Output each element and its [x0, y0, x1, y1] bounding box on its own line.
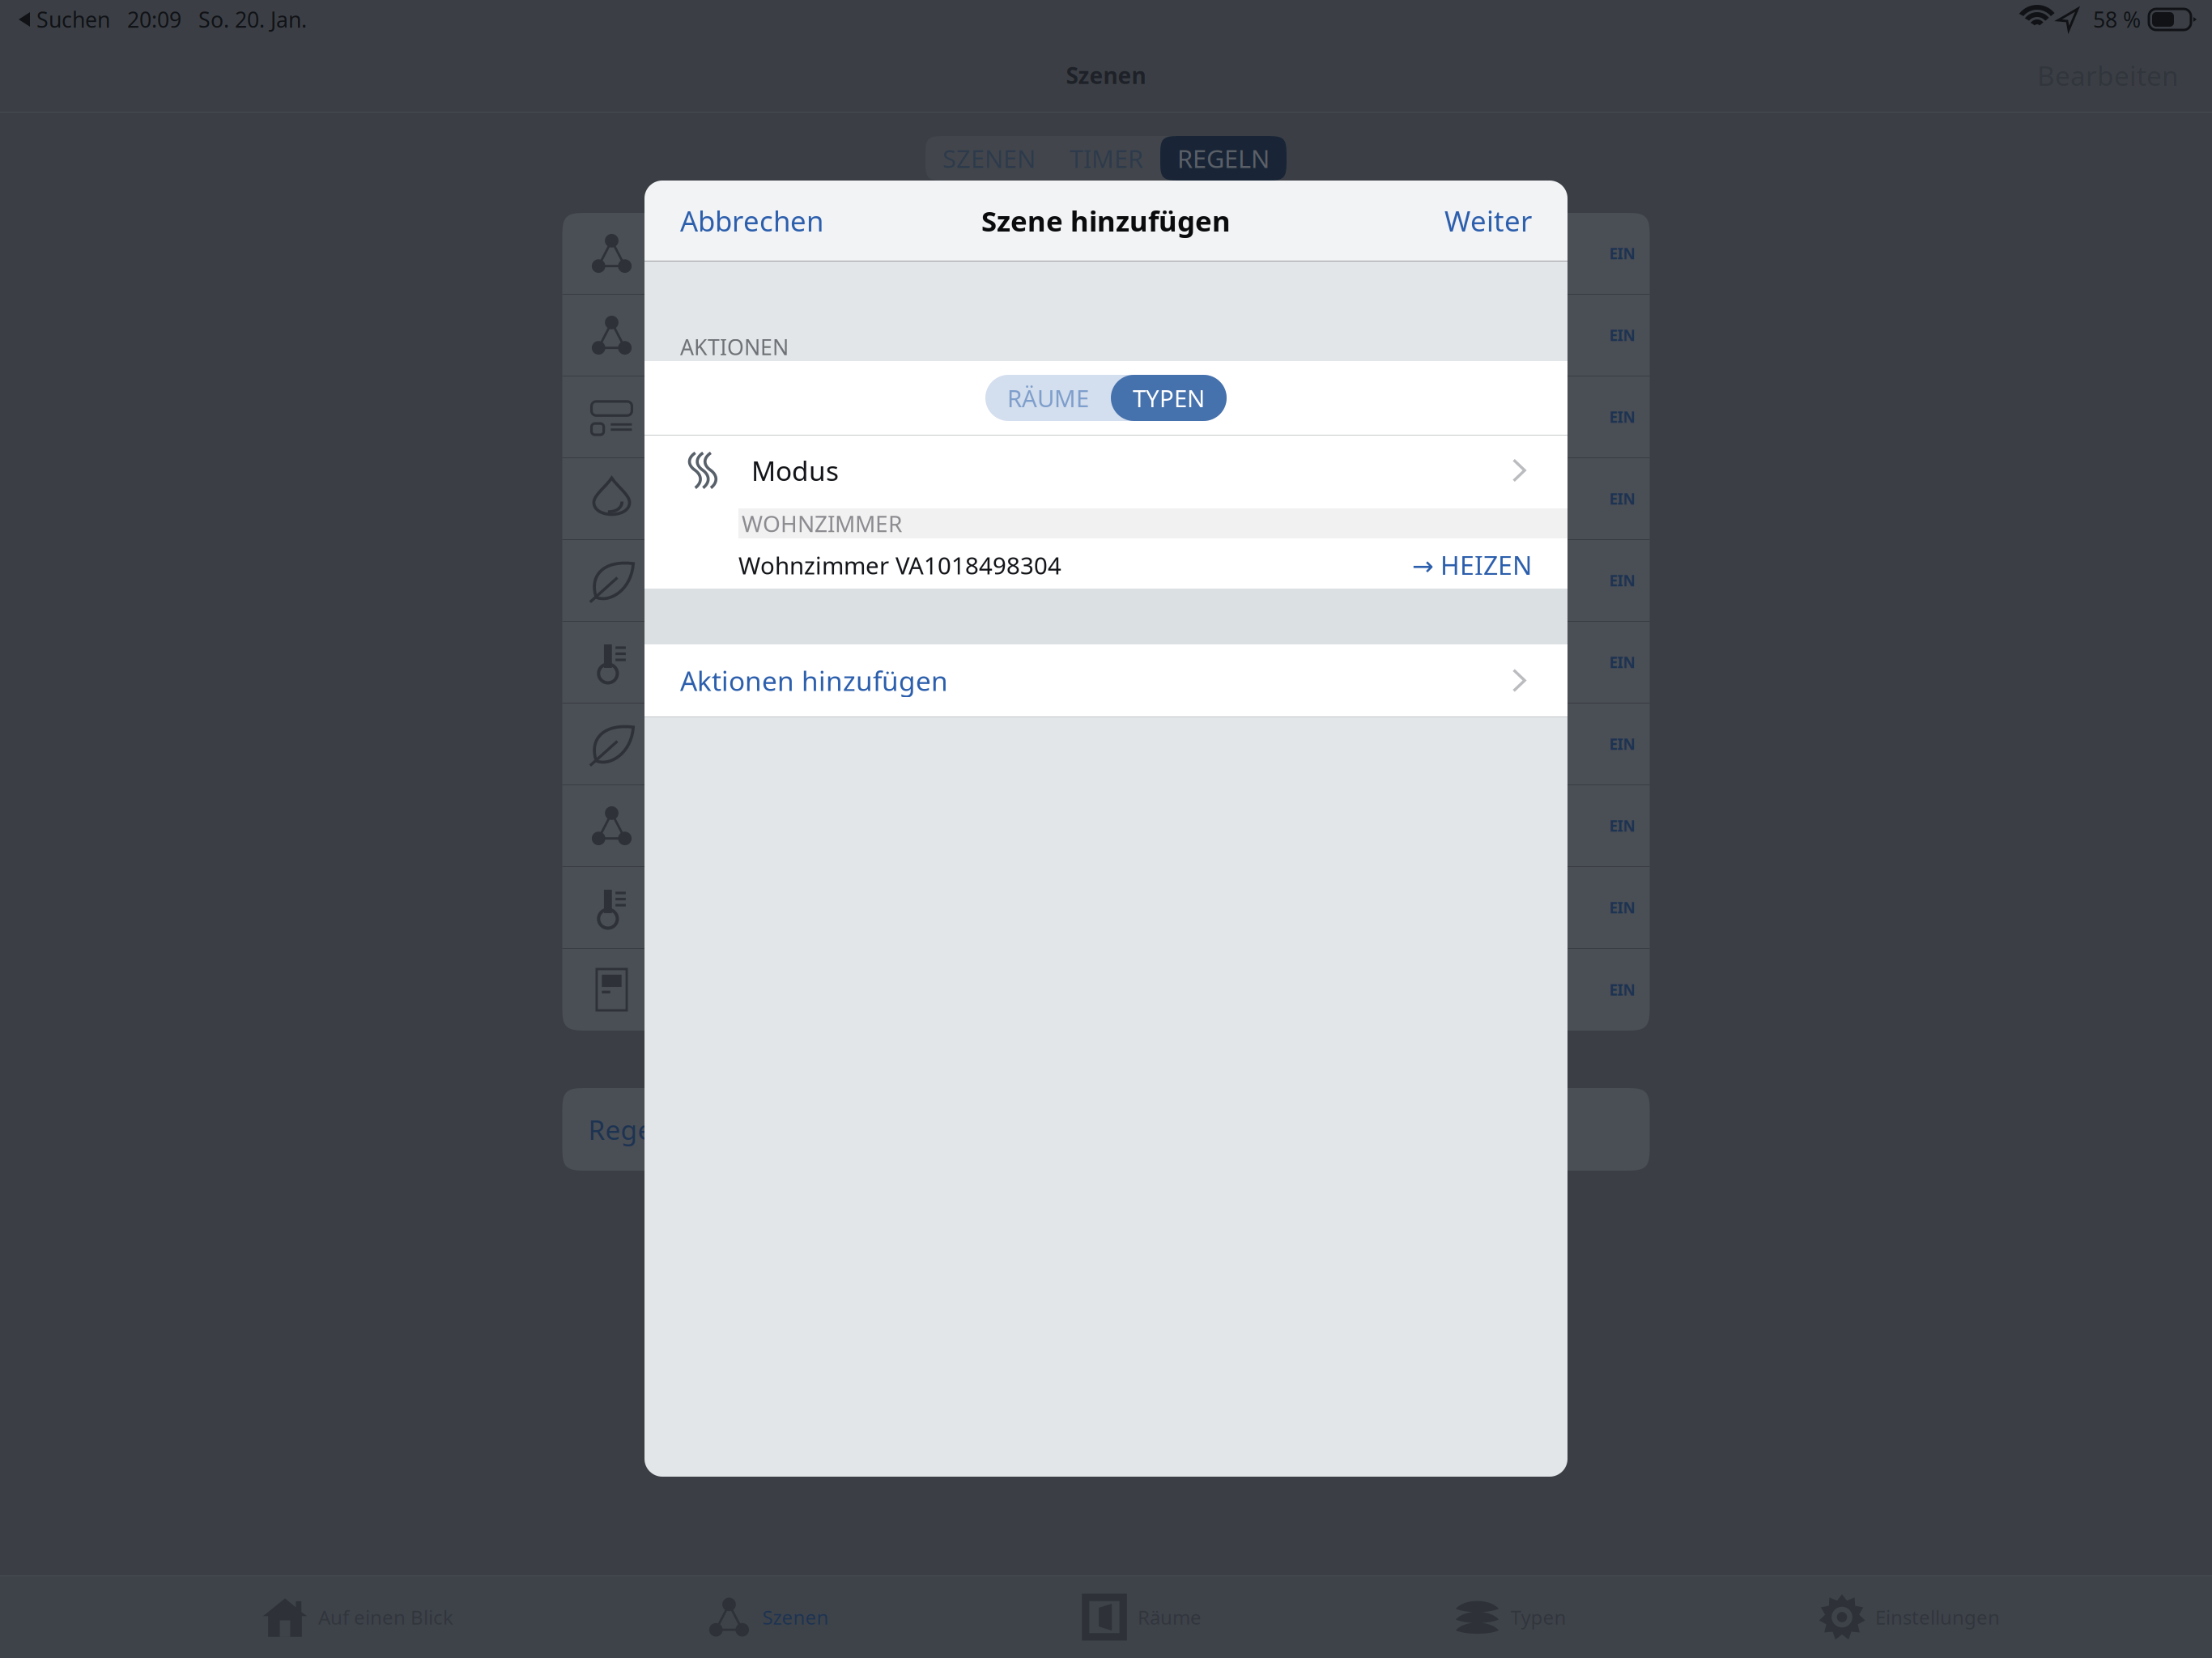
button[interactable]: Räume: [1081, 1576, 1202, 1658]
staticText: Räume: [1138, 1604, 1202, 1630]
staticText: Abbrechen: [680, 202, 823, 239]
staticText: AKTIONEN: [680, 332, 789, 361]
staticText: 58 %: [2082, 5, 2141, 34]
staticText: EIN: [1609, 652, 1635, 672]
staticText: EIN: [1609, 325, 1635, 345]
button[interactable]: Einstellungen: [1819, 1576, 2000, 1658]
staticText: EIN: [1609, 570, 1635, 591]
staticText: → HEIZEN: [1412, 548, 1532, 582]
button[interactable]: TIMER: [1053, 136, 1160, 181]
button[interactable]: Weiter: [1409, 186, 1568, 255]
staticText: Bearbeiten: [2037, 57, 2179, 93]
button[interactable]: Regeln hinzufügen: [562, 1088, 1650, 1171]
staticText: Szene hinzufügen: [981, 202, 1231, 239]
staticText: Suchen: [31, 5, 110, 34]
staticText: REGELN: [1177, 142, 1270, 175]
button[interactable]: Abbrechen: [644, 186, 859, 255]
staticText: Szenen: [1066, 60, 1146, 90]
button[interactable]: RÄUME: [985, 375, 1111, 421]
staticText: 20:09: [110, 5, 181, 34]
staticText: Aktionen hinzufügen: [680, 663, 948, 698]
button[interactable]: Szenen: [706, 1576, 829, 1658]
button[interactable]: Modus: [644, 436, 1568, 505]
button[interactable]: Auf einen Blick: [262, 1576, 453, 1658]
staticText: EIN: [1609, 407, 1635, 427]
staticText: EIN: [1609, 980, 1635, 1000]
staticText: RÄUME: [1007, 382, 1089, 414]
staticText: Typen: [1510, 1604, 1566, 1630]
staticText: TYPEN: [1133, 382, 1205, 414]
staticText: EIN: [1609, 489, 1635, 509]
button[interactable]: SZENEN: [925, 136, 1053, 181]
staticText: Auf einen Blick: [318, 1604, 453, 1630]
staticText: WOHNZIMMER: [742, 508, 902, 538]
staticText: EIN: [1609, 243, 1635, 263]
button[interactable]: Typen: [1454, 1576, 1566, 1658]
staticText: So. 20. Jan.: [181, 5, 307, 34]
staticText: TIMER: [1070, 142, 1143, 175]
button[interactable]: TYPEN: [1111, 375, 1227, 421]
staticText: Wohnzimmer VA1018498304: [738, 549, 1061, 581]
staticText: Modus: [751, 452, 839, 488]
staticText: Einstellungen: [1875, 1604, 2000, 1630]
staticText: SZENEN: [942, 142, 1036, 175]
staticText: Weiter: [1444, 202, 1532, 239]
staticText: EIN: [1609, 897, 1635, 918]
button[interactable]: Aktionen hinzufügen: [644, 644, 1568, 716]
button[interactable]: REGELN: [1160, 136, 1287, 181]
staticText: EIN: [1609, 734, 1635, 754]
staticText: Szenen: [762, 1604, 829, 1630]
staticText: EIN: [1609, 816, 1635, 836]
staticText: Regeln hinzufügen: [588, 1111, 831, 1147]
